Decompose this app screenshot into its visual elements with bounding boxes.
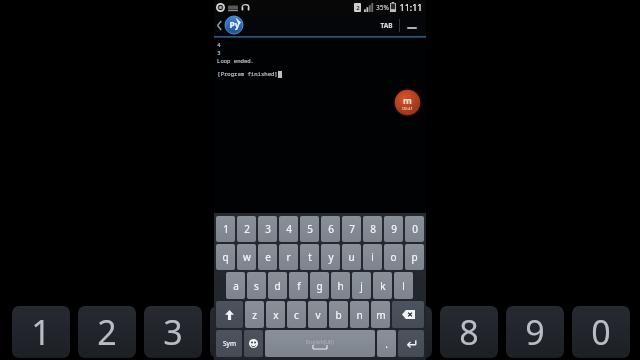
staticText: Sym: [223, 339, 236, 348]
staticText: o: [390, 250, 397, 264]
staticText: Py: [229, 19, 240, 31]
staticText: 2: [97, 309, 117, 355]
button[interactable]: Pydroid: [225, 16, 243, 34]
staticText: 2: [356, 4, 360, 12]
button[interactable]: 9: [506, 306, 564, 358]
button[interactable]: g: [310, 272, 329, 299]
staticText: 5: [307, 222, 313, 236]
staticText: 7: [349, 222, 355, 236]
button[interactable]: n: [350, 301, 369, 328]
button[interactable]: w: [237, 244, 256, 270]
button[interactable]: l: [394, 272, 413, 299]
staticText: n: [356, 308, 363, 322]
button[interactable]: Enter: [398, 330, 424, 357]
staticText: 4: [217, 41, 221, 49]
staticText: d: [274, 279, 281, 293]
button[interactable]: Minimize: [400, 14, 424, 36]
button[interactable]: Space, English (UK): [265, 330, 375, 357]
button[interactable]: t: [300, 244, 319, 270]
staticText: 9: [525, 309, 545, 355]
staticText: 02:41: [402, 106, 413, 112]
button[interactable]: k: [373, 272, 392, 299]
staticText: e: [265, 250, 271, 264]
button[interactable]: .: [377, 330, 396, 357]
staticText: 1: [223, 222, 229, 236]
button[interactable]: p: [405, 244, 424, 270]
button[interactable]: s: [247, 272, 266, 299]
button[interactable]: f: [289, 272, 308, 299]
staticText: i: [371, 250, 374, 264]
button[interactable]: b: [329, 301, 348, 328]
button[interactable]: m: [371, 301, 390, 328]
staticText: 3: [217, 49, 221, 57]
button[interactable]: 8: [363, 216, 382, 242]
staticText: 3: [163, 309, 183, 355]
button[interactable]: q: [216, 244, 235, 270]
button[interactable]: Emoji: [244, 330, 263, 357]
staticText: c: [294, 308, 299, 322]
button[interactable]: 3: [144, 306, 202, 358]
button[interactable]: 4: [279, 216, 298, 242]
staticText: Loop ended.: [217, 57, 254, 65]
button[interactable]: y: [321, 244, 340, 270]
staticText: r: [286, 250, 291, 264]
button[interactable]: 2: [78, 306, 136, 358]
button[interactable]: j: [352, 272, 371, 299]
button[interactable]: v: [308, 301, 327, 328]
button[interactable]: o: [384, 244, 403, 270]
staticText: f: [297, 279, 301, 293]
button[interactable]: Backspace: [392, 301, 424, 328]
staticText: s: [254, 279, 259, 293]
staticText: b: [335, 308, 342, 322]
button[interactable]: 7: [342, 216, 361, 242]
button[interactable]: 0: [572, 306, 630, 358]
staticText: 2: [244, 222, 250, 236]
button[interactable]: 6: [321, 216, 340, 242]
staticText: a: [233, 279, 239, 293]
staticText: 9: [391, 222, 397, 236]
button[interactable]: i: [363, 244, 382, 270]
button[interactable]: a: [226, 272, 245, 299]
button[interactable]: c: [287, 301, 306, 328]
button[interactable]: TAB: [374, 17, 399, 34]
button[interactable]: 9: [384, 216, 403, 242]
staticText: w: [243, 250, 251, 264]
staticText: 4: [219, 309, 232, 355]
staticText: TAB: [380, 21, 393, 30]
staticText: English(UK): [306, 338, 334, 345]
button[interactable]: r: [279, 244, 298, 270]
staticText: 6: [328, 222, 334, 236]
button[interactable]: Screen recorder: [393, 88, 422, 117]
button[interactable]: Symbols: [216, 330, 242, 357]
staticText: p: [411, 250, 418, 264]
button[interactable]: e: [258, 244, 277, 270]
staticText: k: [380, 279, 386, 293]
button[interactable]: 2: [237, 216, 256, 242]
button[interactable]: Shift: [216, 301, 243, 328]
staticText: 11:11: [399, 1, 423, 13]
staticText: 1: [31, 309, 51, 355]
button[interactable]: 3: [258, 216, 277, 242]
button[interactable]: Back: [214, 14, 225, 36]
button[interactable]: z: [245, 301, 264, 328]
button[interactable]: 1: [12, 306, 70, 358]
staticText: u: [348, 250, 355, 264]
button[interactable]: 5: [300, 216, 319, 242]
button[interactable]: u: [342, 244, 361, 270]
staticText: [Program finished]: [217, 70, 278, 78]
button[interactable]: 1: [216, 216, 235, 242]
staticText: v: [315, 308, 321, 322]
staticText: 35%: [376, 3, 389, 12]
button[interactable]: h: [331, 272, 350, 299]
staticText: 8: [370, 222, 376, 236]
button[interactable]: d: [268, 272, 287, 299]
staticText: j: [360, 279, 363, 293]
button[interactable]: 8: [440, 306, 498, 358]
staticText: .: [385, 337, 388, 351]
button[interactable]: x: [266, 301, 285, 328]
button[interactable]: 0: [405, 216, 424, 242]
staticText: 0: [591, 309, 611, 355]
staticText: h: [337, 279, 344, 293]
staticText: 4: [286, 222, 292, 236]
staticText: 3: [265, 222, 271, 236]
